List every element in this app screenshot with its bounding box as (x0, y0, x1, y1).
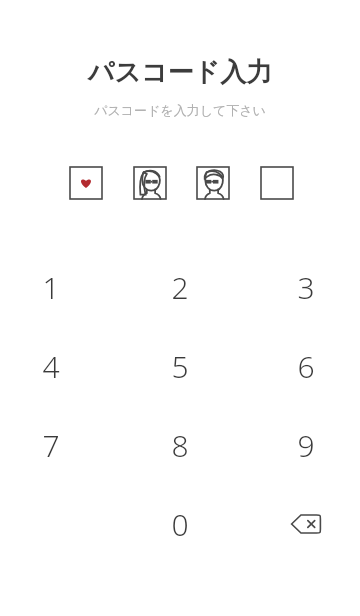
staticText: 0 (171, 504, 189, 545)
staticText: 2 (171, 267, 189, 308)
staticText: 9 (297, 425, 315, 466)
staticText: 1 (42, 267, 60, 308)
staticText: 5 (171, 346, 189, 387)
staticText: 4 (42, 346, 60, 387)
button[interactable]: 3 (270, 251, 342, 323)
button[interactable]: 1 (15, 251, 87, 323)
button[interactable]: 9 (270, 409, 342, 481)
staticText: 7 (42, 425, 60, 466)
button[interactable]: Passcode digit 3 entered (197, 167, 229, 199)
staticText: 8 (171, 425, 189, 466)
button[interactable]: 8 (144, 409, 216, 481)
button[interactable]: Passcode digit 4 empty (261, 167, 293, 199)
button[interactable]: 6 (270, 330, 342, 402)
button[interactable]: Passcode digit 2 entered (134, 167, 166, 199)
staticText: 6 (297, 346, 315, 387)
button[interactable]: 0 (144, 488, 216, 560)
staticText: パスコード入力 (0, 56, 360, 89)
button[interactable]: Backspace (270, 488, 342, 560)
staticText: 3 (297, 267, 315, 308)
button[interactable]: 2 (144, 251, 216, 323)
button[interactable]: 7 (15, 409, 87, 481)
button[interactable]: 4 (15, 330, 87, 402)
staticText: パスコードを入力して下さい (0, 102, 360, 118)
button[interactable]: 5 (144, 330, 216, 402)
button[interactable]: Passcode digit 1 entered (70, 167, 102, 199)
